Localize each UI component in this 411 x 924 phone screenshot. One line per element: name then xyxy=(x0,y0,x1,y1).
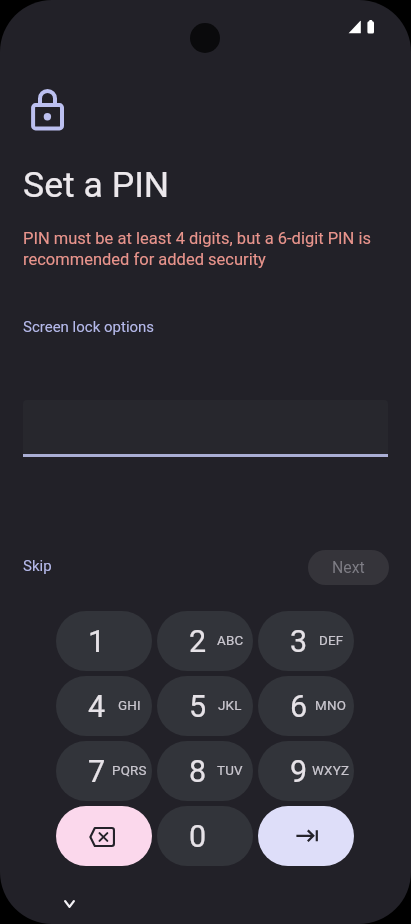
button[interactable]: Next xyxy=(308,550,389,585)
staticText: TUV xyxy=(217,763,243,779)
staticText: 2 xyxy=(189,624,207,660)
staticText: 8 xyxy=(189,754,207,790)
button[interactable]: Enter xyxy=(258,806,354,866)
staticText: 4 xyxy=(88,689,106,725)
button[interactable]: Skip xyxy=(17,552,58,580)
staticText: DEF xyxy=(319,633,344,649)
staticText: GHI xyxy=(118,698,141,714)
staticText: 6 xyxy=(290,689,308,725)
staticText: Next xyxy=(332,558,365,577)
staticText: 3 xyxy=(290,624,308,660)
button[interactable]: 8 xyxy=(157,741,253,801)
button[interactable]: 3 xyxy=(258,611,354,671)
button[interactable]: 1 xyxy=(56,611,152,671)
button[interactable]: 5 xyxy=(157,676,253,736)
staticText: 1 xyxy=(88,624,106,660)
staticText: 9 xyxy=(290,754,308,790)
staticText: 0 xyxy=(189,819,207,855)
staticText: 7 xyxy=(88,754,106,790)
staticText: PIN must be at least 4 digits, but a 6-d… xyxy=(23,227,389,269)
staticText: 5 xyxy=(189,689,207,725)
button[interactable]: 9 xyxy=(258,741,354,801)
staticText: MNO xyxy=(315,698,347,714)
staticText: Screen lock options xyxy=(23,318,155,336)
staticText: WXYZ xyxy=(312,763,350,779)
staticText: JKL xyxy=(218,698,242,714)
staticText: Set a PIN xyxy=(23,164,170,206)
staticText: Skip xyxy=(23,557,52,575)
button[interactable]: 6 xyxy=(258,676,354,736)
button[interactable]: 7 xyxy=(56,741,152,801)
button[interactable]: Backspace xyxy=(56,806,152,866)
button[interactable]: Hide keyboard xyxy=(55,890,83,918)
button[interactable]: 0 xyxy=(157,806,253,866)
button[interactable]: Screen lock options xyxy=(17,313,161,341)
button[interactable]: 4 xyxy=(56,676,152,736)
staticText: PQRS xyxy=(112,763,147,779)
button[interactable]: 2 xyxy=(157,611,253,671)
staticText: ABC xyxy=(217,633,244,649)
